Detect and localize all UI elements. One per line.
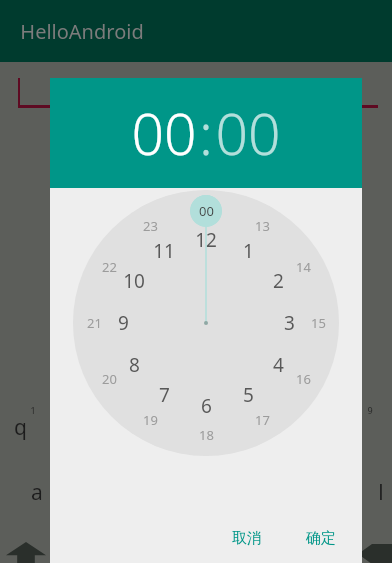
button[interactable]: 确定 [296, 521, 346, 556]
staticText: 1 [243, 238, 254, 264]
staticText: 确定 [306, 529, 336, 548]
staticText: 1 [30, 404, 36, 416]
button[interactable]: 10 [117, 268, 151, 294]
button[interactable]: 23 [133, 216, 167, 236]
staticText: 7 [159, 382, 170, 408]
staticText: 9 [118, 310, 129, 336]
button[interactable]: 14 [286, 257, 320, 277]
button[interactable]: 8 [117, 352, 151, 378]
button[interactable]: 21 [77, 313, 111, 333]
staticText: 3 [284, 310, 295, 336]
staticText: 18 [199, 426, 214, 444]
staticText: : [199, 94, 213, 172]
staticText: 8 [129, 352, 140, 378]
button[interactable]: 00 [129, 94, 199, 172]
button[interactable]: 15 [301, 313, 335, 333]
staticText: 19 [143, 411, 158, 429]
staticText: 5 [243, 382, 254, 408]
staticText: 00 [199, 202, 214, 220]
staticText: 16 [296, 370, 311, 388]
button[interactable]: 00 [189, 201, 223, 221]
staticText: 10 [123, 268, 145, 294]
button[interactable]: 19 [133, 410, 167, 430]
button[interactable]: 16 [286, 369, 320, 389]
staticText: 14 [296, 258, 311, 276]
staticText: a [31, 478, 43, 507]
staticText: 13 [255, 217, 270, 235]
staticText: q [14, 413, 27, 442]
staticText: HelloAndroid [20, 18, 144, 45]
staticText: 21 [87, 314, 102, 332]
staticText: 22 [102, 258, 117, 276]
button[interactable]: 9 [106, 310, 140, 336]
button[interactable]: 1 [231, 238, 265, 264]
button[interactable]: Selected hour 00 [190, 195, 222, 227]
button[interactable]: 00 [213, 94, 283, 172]
button[interactable]: 22 [92, 257, 126, 277]
staticText: 11 [153, 238, 175, 264]
button[interactable]: 6 [189, 393, 223, 419]
staticText: 取消 [232, 529, 262, 548]
button[interactable]: 18 [189, 425, 223, 445]
staticText: l [378, 478, 384, 507]
button[interactable]: 17 [245, 410, 279, 430]
button[interactable]: 取消 [222, 521, 272, 556]
staticText: 6 [201, 393, 212, 419]
staticText: 9 [367, 404, 373, 416]
staticText: 12 [195, 227, 217, 253]
staticText: 15 [311, 314, 326, 332]
button[interactable]: 13 [245, 216, 279, 236]
staticText: 2 [273, 268, 284, 294]
staticText: 23 [143, 217, 158, 235]
staticText: 4 [273, 352, 284, 378]
button[interactable]: 5 [231, 382, 265, 408]
button[interactable]: 4 [261, 352, 295, 378]
staticText: 20 [102, 370, 117, 388]
button[interactable]: 11 [147, 238, 181, 264]
button[interactable]: 2 [261, 268, 295, 294]
button[interactable]: 12 [189, 227, 223, 253]
button[interactable]: 3 [272, 310, 306, 336]
button[interactable]: 20 [92, 369, 126, 389]
button[interactable]: 7 [147, 382, 181, 408]
staticText: 17 [255, 411, 270, 429]
staticText: 00 [199, 202, 214, 220]
